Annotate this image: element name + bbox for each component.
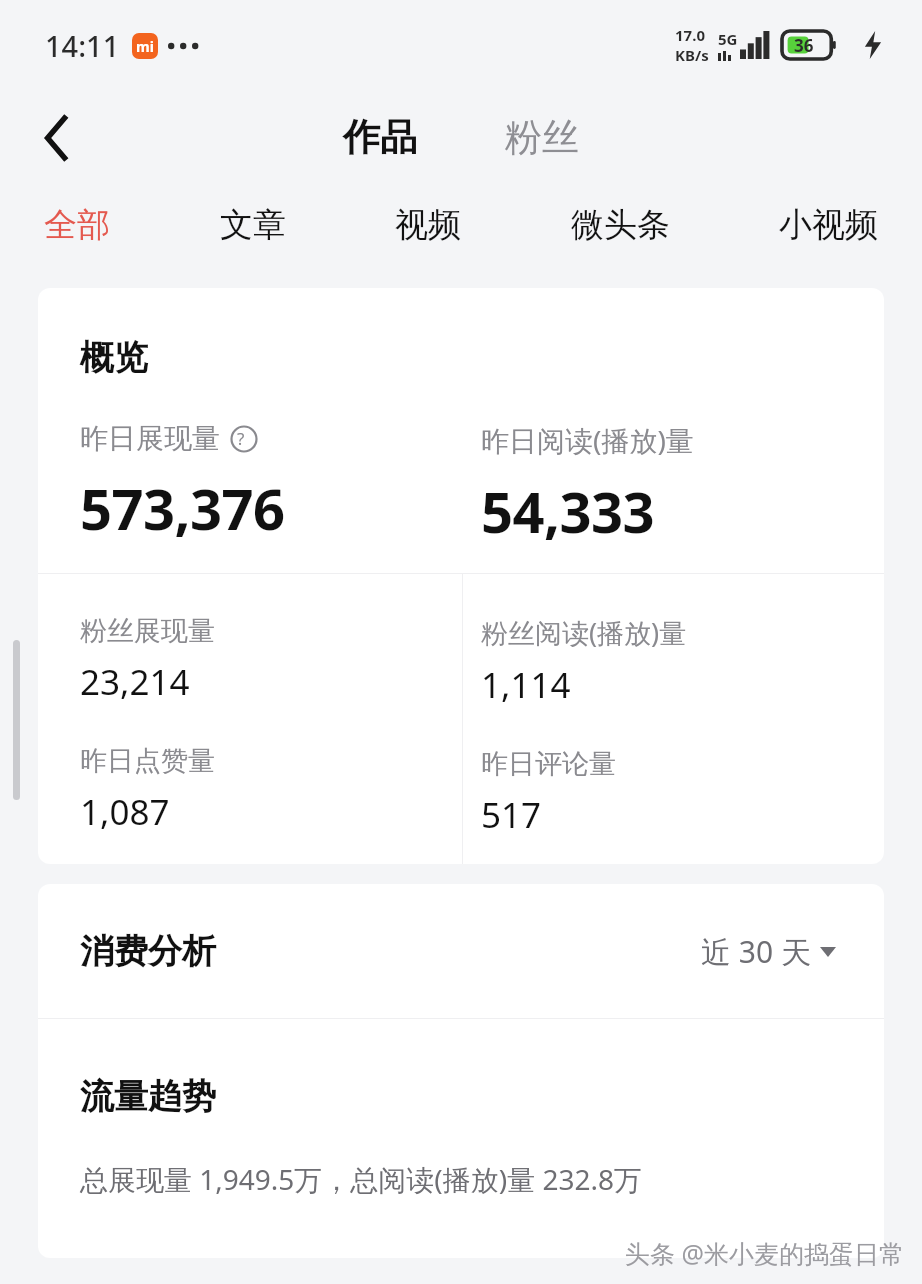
button[interactable]: 粉丝 (491, 108, 593, 167)
staticText: 近 30 天 (701, 931, 811, 972)
staticText: 5G (718, 29, 738, 49)
staticText: 昨日阅读(播放)量 (481, 421, 694, 459)
staticText: 14:11 (45, 26, 120, 65)
staticText: 粉丝 (505, 114, 579, 161)
button[interactable]: 作品 (329, 108, 431, 167)
staticText: 517 (481, 791, 542, 839)
staticText: 昨日展现量 (80, 421, 220, 456)
staticText: 1,087 (80, 788, 170, 836)
staticText: 微头条 (571, 204, 670, 246)
staticText: 54,333 (481, 473, 655, 549)
button[interactable]: 小视频 (775, 196, 882, 254)
staticText: 36 (794, 34, 814, 57)
button[interactable]: 视频 (391, 196, 465, 254)
staticText: 视频 (395, 204, 461, 246)
button[interactable]: 微头条 (567, 196, 674, 254)
staticText: 头条 @米小麦的捣蛋日常 (625, 1236, 904, 1270)
staticText: KB/s (675, 45, 709, 65)
button[interactable]: Back (26, 106, 90, 170)
staticText: 昨日点赞量 (80, 744, 215, 778)
staticText: 23,214 (80, 658, 190, 706)
staticText: 小视频 (779, 204, 878, 246)
staticText: 昨日评论量 (481, 747, 616, 781)
staticText: 全部 (44, 204, 110, 246)
button[interactable]: 全部 (40, 196, 114, 254)
staticText: ? (237, 427, 245, 450)
staticText: 概览 (80, 336, 148, 379)
button[interactable]: 文章 (216, 196, 290, 254)
button[interactable]: 近 30 天 (695, 923, 842, 980)
staticText: 总展现量 1,949.5万，总阅读(播放)量 232.8万 (80, 1160, 643, 1198)
staticText: 文章 (220, 204, 286, 246)
staticText: 573,376 (80, 470, 285, 546)
staticText: 流量趋势 (80, 1075, 216, 1118)
staticText: 粉丝展现量 (80, 614, 215, 648)
staticText: mi (136, 37, 154, 56)
staticText: 作品 (343, 114, 417, 161)
staticText: 粉丝阅读(播放)量 (481, 614, 687, 651)
staticText: 17.0 (675, 25, 705, 45)
staticText: 消费分析 (80, 930, 216, 973)
staticText: 1,114 (481, 661, 571, 709)
